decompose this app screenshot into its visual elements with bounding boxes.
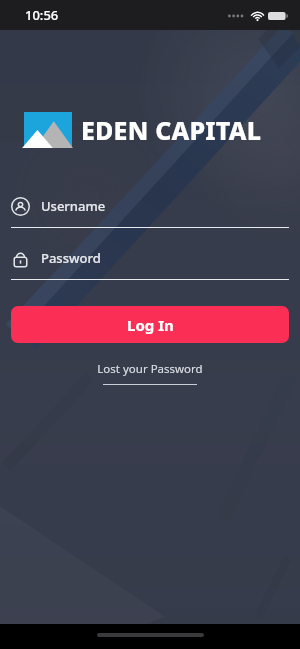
button[interactable]: Username xyxy=(11,190,289,228)
button[interactable]: Lost your Password xyxy=(91,361,209,385)
staticText: Lost your Password xyxy=(97,361,203,377)
button[interactable]: Password xyxy=(11,242,289,280)
button[interactable]: Log In xyxy=(11,306,289,343)
staticText: EDEN CAPITAL xyxy=(81,113,262,147)
staticText: Username xyxy=(41,197,106,215)
staticText: 10:56 xyxy=(25,6,59,24)
staticText: Password xyxy=(41,249,101,267)
staticText: Log In xyxy=(127,315,174,335)
